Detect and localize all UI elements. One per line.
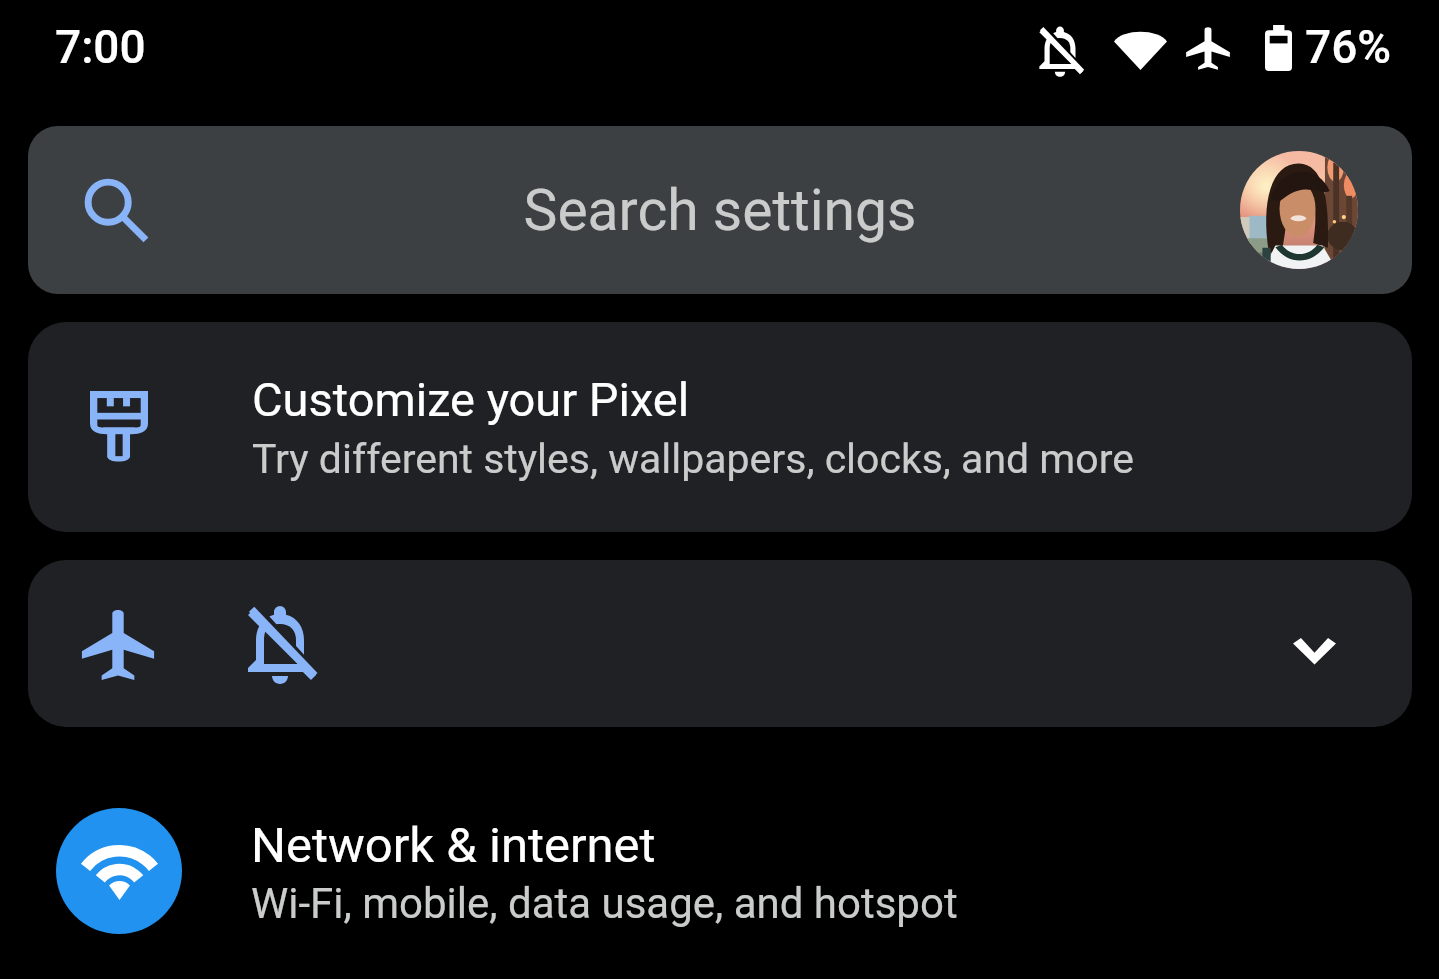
staticText: Try different styles, wallpapers, clocks… — [252, 435, 1134, 483]
staticText: 76% — [1305, 20, 1392, 74]
button[interactable]: Search settings — [28, 126, 1412, 294]
staticText: Wi-Fi, mobile, data usage, and hotspot — [251, 879, 958, 928]
staticText: Customize your Pixel — [252, 372, 690, 427]
button[interactable]: Network & internet — [0, 780, 1439, 979]
button[interactable]: Airplane mode — [72, 598, 164, 690]
staticText: Search settings — [175, 177, 1265, 244]
button[interactable]: Airplane mode — [28, 560, 1412, 727]
button[interactable]: Expand — [1268, 605, 1360, 697]
staticText: 7:00 — [55, 20, 146, 74]
staticText: Network & internet — [251, 817, 656, 874]
button[interactable]: Do not disturb — [224, 588, 336, 700]
button[interactable]: Account — [1240, 151, 1358, 269]
button[interactable]: Customize your Pixel — [28, 322, 1412, 532]
